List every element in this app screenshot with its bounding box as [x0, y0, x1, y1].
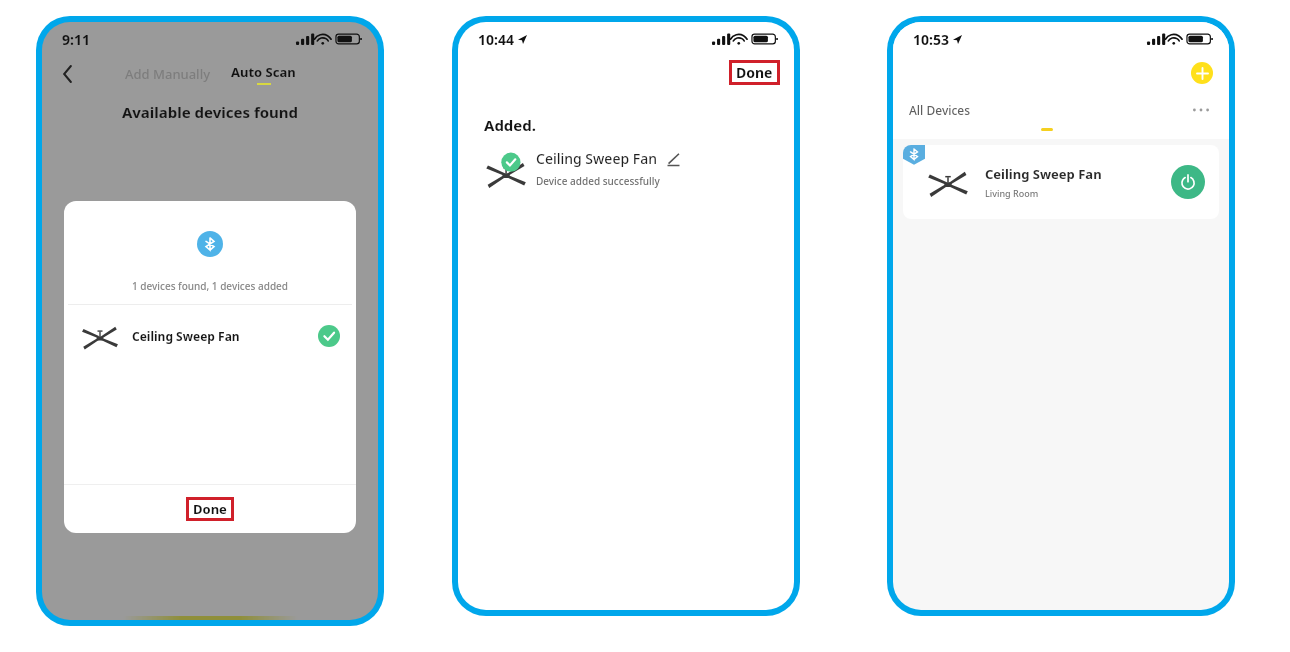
staticText: Ceiling Sweep Fan [985, 165, 1102, 183]
staticText: Device added successfully [536, 174, 660, 188]
button[interactable]: Add device [1191, 62, 1213, 84]
staticText: Auto Scan [231, 63, 296, 81]
staticText: Ceiling Sweep Fan [132, 328, 240, 344]
staticText: 10:53 [913, 30, 949, 49]
staticText: All Devices [909, 102, 971, 118]
button[interactable]: Ceiling Sweep Fan [458, 149, 794, 189]
button[interactable]: Rename device [665, 151, 681, 167]
staticText: 10:44 [478, 30, 514, 49]
button[interactable]: Ceiling Sweep Fan [903, 145, 1219, 219]
button[interactable]: More options [1189, 98, 1213, 122]
staticText: Done [736, 63, 773, 82]
button[interactable]: Done [186, 497, 234, 521]
button[interactable]: Auto Scan [225, 63, 302, 85]
staticText: 9:11 [62, 30, 90, 49]
button[interactable]: Add Manually [119, 65, 217, 83]
button[interactable]: Power toggle [1171, 165, 1205, 199]
button[interactable]: Ceiling Sweep Fan [64, 305, 356, 367]
staticText: Living Room [985, 187, 1039, 199]
button[interactable]: Done [729, 60, 780, 85]
staticText: Ceiling Sweep Fan [536, 149, 657, 168]
staticText: 1 devices found, 1 devices added [64, 279, 356, 293]
staticText: Done [193, 500, 227, 518]
staticText: Added. [484, 115, 536, 135]
staticText: Available devices found [42, 102, 378, 122]
button[interactable]: Back [54, 60, 82, 88]
button[interactable]: All Devices [909, 102, 971, 118]
staticText: Add Manually [125, 65, 211, 83]
